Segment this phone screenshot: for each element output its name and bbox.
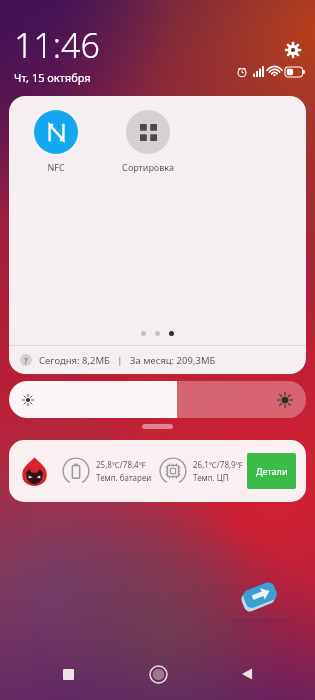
button[interactable] [9, 381, 306, 418]
button[interactable]: ? [9, 346, 306, 374]
button[interactable]: Recents [46, 652, 90, 696]
staticText: Темп. батареи [96, 472, 152, 483]
staticText: NFC [47, 161, 65, 173]
button[interactable]: Settings [279, 36, 307, 64]
staticText: Сегодня: 8,2МБ | За месяц: 209,3МБ [39, 354, 216, 367]
staticText: 25,8℃/78,4℉ [96, 459, 146, 470]
staticText: mobile-review.com [231, 616, 289, 625]
button[interactable]: Back [225, 652, 269, 696]
staticText: Темп. ЦП [193, 472, 229, 483]
button[interactable]: Сортировка [115, 108, 181, 175]
staticText: 11:46 [14, 22, 100, 68]
button[interactable]: 25,8℃/78,4℉ [9, 440, 306, 502]
staticText: Детали [256, 465, 288, 477]
staticText: ? [24, 355, 28, 366]
staticText: Чт, 15 октября [14, 70, 91, 85]
staticText: Сортировка [122, 161, 174, 173]
staticText: 26,1℃/78,9℉ [193, 459, 243, 470]
button[interactable]: Детали [247, 453, 296, 489]
button[interactable]: Home [136, 652, 180, 696]
button[interactable]: NFC [23, 108, 89, 175]
